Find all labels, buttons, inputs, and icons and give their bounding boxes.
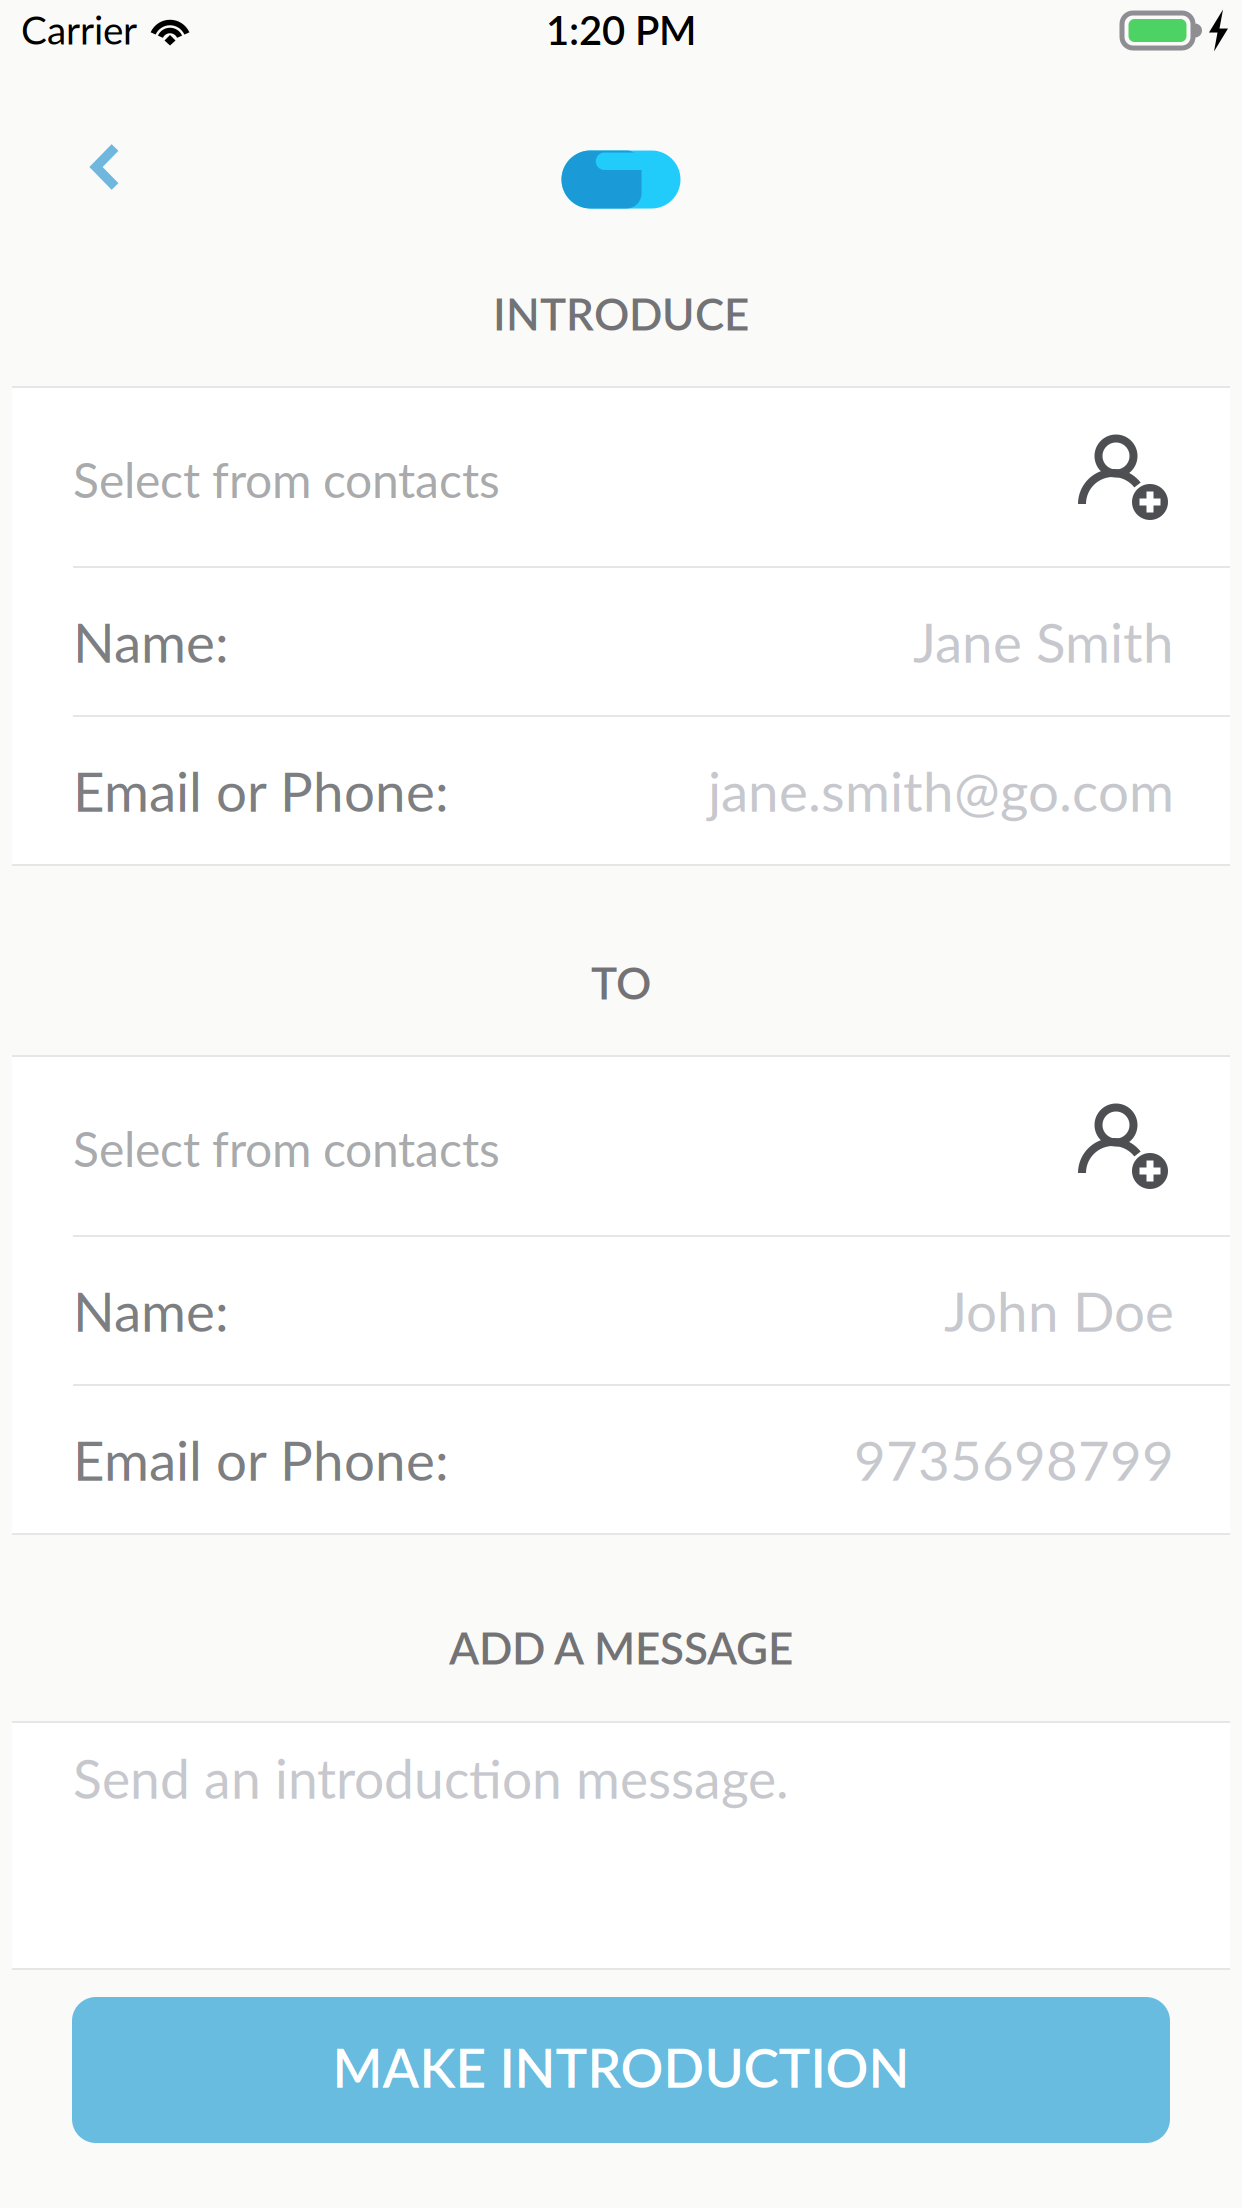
button[interactable]: Select from contacts — [12, 388, 1052, 566]
staticText: Carrier — [21, 6, 137, 53]
staticText: Select from contacts — [73, 451, 500, 508]
button[interactable]: Email or Phone: — [12, 1386, 1230, 1533]
staticText: Email or Phone: — [73, 1427, 449, 1492]
button[interactable]: Add from contacts — [1052, 1057, 1230, 1235]
staticText: Jane Smith — [913, 609, 1174, 674]
staticText: TO — [591, 956, 651, 1009]
button[interactable]: Add from contacts — [1052, 388, 1230, 566]
button[interactable]: Name: — [12, 568, 1230, 715]
button[interactable]: Select from contacts — [12, 1057, 1052, 1235]
button[interactable]: Back — [0, 109, 160, 249]
button[interactable]: Send an introduction message. — [12, 1723, 1230, 1968]
staticText: Name: — [73, 609, 229, 674]
staticText: INTRODUCE — [493, 287, 749, 340]
staticText: Name: — [73, 1278, 229, 1343]
button[interactable]: Name: — [12, 1237, 1230, 1384]
staticText: Send an introduction message. — [73, 1746, 789, 1810]
button[interactable]: Email or Phone: — [12, 717, 1230, 864]
staticText: 1:20 PM — [546, 5, 696, 53]
staticText: John Doe — [944, 1278, 1174, 1343]
staticText: Select from contacts — [73, 1120, 500, 1177]
staticText: 9735698799 — [854, 1427, 1174, 1492]
button[interactable]: MAKE INTRODUCTION — [72, 1997, 1170, 2143]
staticText: jane.smith@go.com — [708, 758, 1174, 823]
staticText: Email or Phone: — [73, 758, 449, 823]
staticText: MAKE INTRODUCTION — [332, 2035, 909, 2099]
staticText: ADD A MESSAGE — [449, 1621, 793, 1674]
